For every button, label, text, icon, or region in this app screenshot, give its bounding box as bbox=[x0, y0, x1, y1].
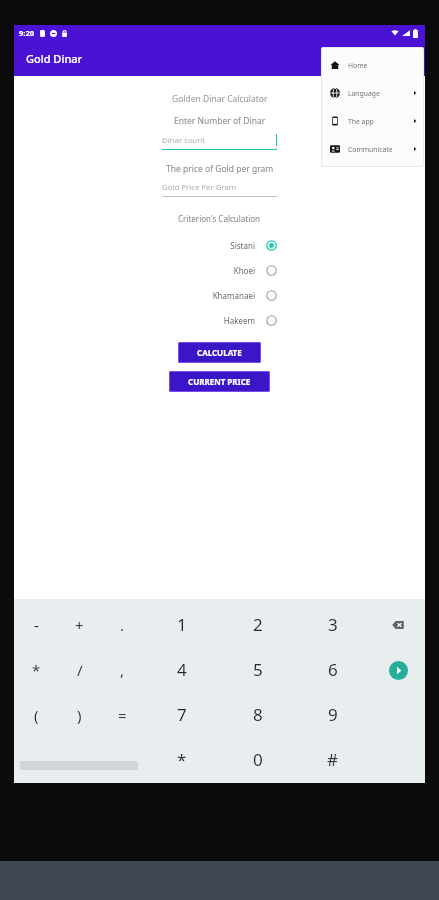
staticText: 5 bbox=[253, 658, 263, 681]
staticText: 9 bbox=[328, 703, 338, 726]
staticText: Khoei bbox=[145, 265, 255, 276]
button[interactable]: - bbox=[14, 602, 58, 647]
button[interactable]: = bbox=[101, 692, 144, 737]
staticText: Hakeem bbox=[145, 315, 255, 326]
button[interactable]: 8 bbox=[220, 692, 295, 737]
button[interactable]: CURRENT PRICE bbox=[169, 371, 270, 392]
button[interactable]: , bbox=[101, 647, 144, 692]
staticText: * bbox=[32, 660, 41, 680]
staticText: CURRENT PRICE bbox=[188, 376, 251, 387]
button[interactable]: Dinar count bbox=[162, 134, 277, 150]
button[interactable]: 7 bbox=[144, 692, 220, 737]
button[interactable]: # bbox=[295, 737, 370, 782]
button[interactable]: Gold Price Per Gram bbox=[162, 182, 277, 197]
button[interactable]: 2 bbox=[220, 602, 295, 647]
button[interactable]: ( bbox=[14, 692, 58, 737]
button[interactable]: Home bbox=[321, 51, 424, 79]
button[interactable]: 6 bbox=[295, 647, 370, 692]
button[interactable]: + bbox=[58, 602, 101, 647]
staticText: . bbox=[120, 615, 125, 635]
staticText: = bbox=[118, 705, 127, 725]
staticText: 7 bbox=[177, 703, 187, 726]
staticText: Sistani bbox=[145, 240, 255, 251]
button[interactable]: Khamanaei bbox=[145, 283, 295, 308]
staticText: 3 bbox=[328, 613, 338, 636]
staticText: Language bbox=[348, 89, 380, 98]
staticText: Enter Number of Dinar bbox=[174, 115, 266, 127]
staticText: Khamanaei bbox=[145, 290, 255, 301]
staticText: 2 bbox=[253, 613, 263, 636]
staticText: Dinar count bbox=[162, 135, 206, 146]
button[interactable]: Khoei bbox=[145, 258, 295, 283]
staticText: CALCULATE bbox=[197, 347, 242, 358]
button[interactable]: Enter bbox=[383, 655, 413, 685]
button[interactable]: The app bbox=[321, 107, 424, 135]
staticText: / bbox=[77, 660, 83, 680]
staticText: * bbox=[177, 748, 187, 771]
button[interactable]: 0 bbox=[220, 737, 295, 782]
button[interactable]: 1 bbox=[144, 602, 220, 647]
staticText: 6 bbox=[328, 658, 338, 681]
button[interactable]: * bbox=[144, 737, 220, 782]
staticText: Communicate bbox=[348, 145, 393, 154]
button[interactable]: Communicate bbox=[321, 135, 424, 163]
staticText: 1 bbox=[177, 613, 187, 636]
staticText: Home bbox=[348, 61, 368, 70]
button[interactable]: 4 bbox=[144, 647, 220, 692]
button[interactable]: 3 bbox=[295, 602, 370, 647]
button[interactable]: ) bbox=[58, 692, 101, 737]
button[interactable] bbox=[14, 737, 144, 782]
button[interactable]: / bbox=[58, 647, 101, 692]
button[interactable]: Hakeem bbox=[145, 308, 295, 333]
staticText: ) bbox=[77, 705, 82, 725]
staticText: - bbox=[34, 615, 39, 635]
staticText: , bbox=[120, 660, 125, 680]
button[interactable]: * bbox=[14, 647, 58, 692]
button[interactable]: CALCULATE bbox=[178, 342, 261, 363]
button[interactable]: Gold Dinar bbox=[26, 51, 83, 66]
staticText: The app bbox=[348, 117, 374, 126]
button[interactable]: Backspace bbox=[383, 610, 413, 640]
staticText: Gold Dinar bbox=[26, 51, 83, 66]
button[interactable]: . bbox=[101, 602, 144, 647]
staticText: The price of Gold per gram bbox=[166, 163, 274, 175]
staticText: Gold Price Per Gram bbox=[162, 182, 237, 193]
staticText: ( bbox=[34, 705, 39, 725]
staticText: 9:20 bbox=[19, 28, 34, 38]
button[interactable]: Language bbox=[321, 79, 424, 107]
staticText: 8 bbox=[253, 703, 263, 726]
button[interactable]: 9 bbox=[295, 692, 370, 737]
staticText: 4 bbox=[177, 658, 187, 681]
button[interactable]: Sistani bbox=[145, 233, 295, 258]
staticText: Criterion's Calculation bbox=[178, 213, 261, 224]
staticText: # bbox=[327, 748, 338, 771]
button[interactable]: 5 bbox=[220, 647, 295, 692]
staticText: 0 bbox=[253, 748, 263, 771]
staticText: Golden Dinar Calculator bbox=[172, 93, 268, 105]
staticText: + bbox=[75, 615, 84, 635]
